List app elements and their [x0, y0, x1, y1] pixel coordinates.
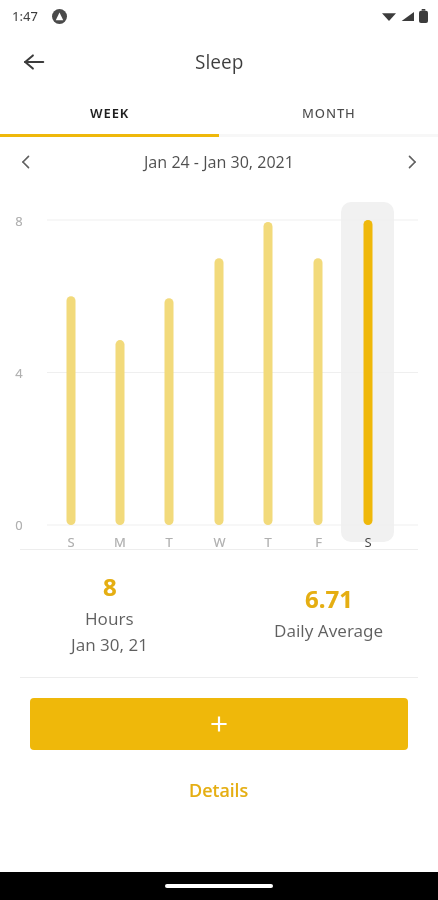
button[interactable]: WEEK [0, 92, 219, 134]
staticText: Sleep [195, 49, 244, 75]
staticText: 0 [15, 516, 23, 534]
staticText: MONTH [302, 104, 356, 122]
staticText: Daily Average [274, 619, 384, 642]
button[interactable]: Next week [392, 142, 432, 182]
staticText: Details [189, 778, 249, 803]
staticText: S [364, 533, 372, 551]
staticText: Hours [85, 607, 134, 630]
staticText: T [165, 533, 173, 551]
staticText: M [114, 533, 126, 551]
staticText: 8 [15, 212, 23, 230]
staticText: T [264, 533, 272, 551]
staticText: 4 [15, 364, 23, 382]
staticText: Jan 24 - Jan 30, 2021 [144, 151, 294, 173]
staticText: 6.71 [305, 582, 353, 615]
button[interactable]: Add sleep entry [30, 698, 408, 750]
button[interactable]: Back [12, 40, 56, 84]
staticText: W [213, 533, 226, 551]
staticText: S [67, 533, 75, 551]
button[interactable]: Details [30, 764, 408, 817]
staticText: F [315, 533, 322, 551]
staticText: 8 [103, 570, 117, 603]
button[interactable] [341, 202, 394, 542]
staticText: WEEK [90, 104, 130, 122]
staticText: Jan 30, 21 [71, 633, 148, 656]
button[interactable]: MONTH [219, 92, 438, 134]
button[interactable]: Previous week [6, 142, 46, 182]
staticText: 1:47 [12, 7, 38, 25]
